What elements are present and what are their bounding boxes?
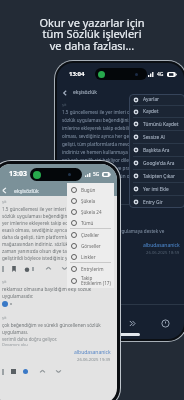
button[interactable]: Şükela	[71, 195, 114, 206]
staticText: ile uğraştığımız resmi bu uygulamaya des…	[62, 228, 165, 234]
button[interactable]: Google'da Ara	[133, 157, 184, 169]
staticText: 5G	[93, 171, 100, 178]
button[interactable]: Tümü	[71, 217, 114, 228]
staticText: şit	[2, 199, 7, 204]
button[interactable]: Başlıkta Ara	[133, 144, 184, 156]
staticText: Takipten Çıkar	[143, 173, 175, 180]
button[interactable]: Sessize Al	[133, 131, 184, 143]
staticText: Entrylerim	[81, 266, 104, 272]
staticText: 13:03	[9, 169, 27, 179]
staticText: Okur ve yazarlar için tüm Sözlük işlevle…	[0, 15, 184, 53]
staticText: Ayarlar	[143, 96, 160, 103]
button[interactable]: Previous	[63, 319, 72, 328]
button[interactable]: Ayarlar	[133, 94, 184, 105]
button[interactable]: Takip Ettiklerim (17)	[71, 274, 114, 287]
staticText: reklamsız olmasına bayıldığım ekşi sözlü…	[2, 286, 111, 299]
button[interactable]: Tümünü Kaydet	[133, 118, 184, 130]
staticText: verimli daha doğru geliyor.	[2, 336, 57, 342]
staticText: albudasananick	[74, 349, 111, 356]
staticText: Bugün	[81, 187, 96, 193]
button[interactable]: Info	[161, 319, 170, 328]
staticText: 26.06.2025 18:59	[146, 250, 180, 256]
button[interactable]: Entry Gir	[133, 196, 184, 208]
staticText: Şükela 24	[81, 209, 102, 215]
staticText: ekşisözlük	[73, 89, 97, 96]
button[interactable]: Çizelkler	[71, 229, 114, 240]
staticText: şit	[2, 279, 7, 284]
staticText: Yer imi Ekle	[143, 186, 169, 193]
button[interactable]: Bugün	[71, 184, 114, 195]
staticText: Başlıkta Ara	[143, 147, 170, 154]
button[interactable]: Linkler	[71, 251, 114, 262]
staticText: 1.5 güncellemesi ile yer imleri olan evr…	[62, 109, 180, 180]
button[interactable]: Görseller	[71, 240, 114, 251]
staticText: Linkler	[81, 254, 96, 260]
staticText: ekşisözlük	[14, 187, 39, 194]
staticText: Şükela	[81, 198, 96, 204]
staticText: şit	[62, 102, 67, 107]
staticText: Sessize Al	[143, 134, 165, 141]
staticText: Kaydet	[143, 108, 159, 115]
staticText: Takip Ettiklerim (17)	[81, 275, 111, 286]
button[interactable]: ekşisözlük	[62, 85, 184, 100]
button[interactable]: Entrylerim	[71, 263, 114, 274]
staticText: Google'da Ara	[143, 160, 175, 167]
staticText: çok beğendiğim ve sürekli güncellenen sö…	[2, 322, 111, 335]
button[interactable]: Next	[96, 319, 105, 328]
staticText: güncellenen sözlük	[62, 213, 109, 220]
staticText: albudasananick	[143, 242, 180, 249]
button[interactable]: Yer imi Ekle	[133, 183, 184, 195]
button[interactable]: Takipten Çıkar	[133, 170, 184, 182]
staticText: 4G	[157, 71, 164, 78]
staticText: şit	[2, 315, 7, 320]
staticText: 13:04	[69, 70, 85, 78]
staticText: 26.06.2025 19:39	[77, 357, 111, 363]
staticText: Entry Gir	[143, 199, 163, 206]
staticText: Görseller	[81, 243, 101, 249]
staticText: Tümü	[81, 220, 94, 226]
staticText: Devamını oku	[2, 342, 28, 347]
staticText: antix	[168, 186, 180, 193]
button[interactable]: Şükela 24	[71, 206, 114, 217]
staticText: 26.06.2025 12:07	[146, 194, 180, 200]
button[interactable]: Last page	[128, 319, 137, 328]
button[interactable]: Kaydet	[133, 106, 184, 117]
staticText: Tümünü Kaydet	[143, 121, 179, 128]
button[interactable]: ekşisözlük	[1, 184, 117, 196]
staticText: Çizelkler	[81, 232, 100, 238]
staticText: 1.5 güncellemesi ile yer imleri olan evr…	[2, 206, 111, 261]
